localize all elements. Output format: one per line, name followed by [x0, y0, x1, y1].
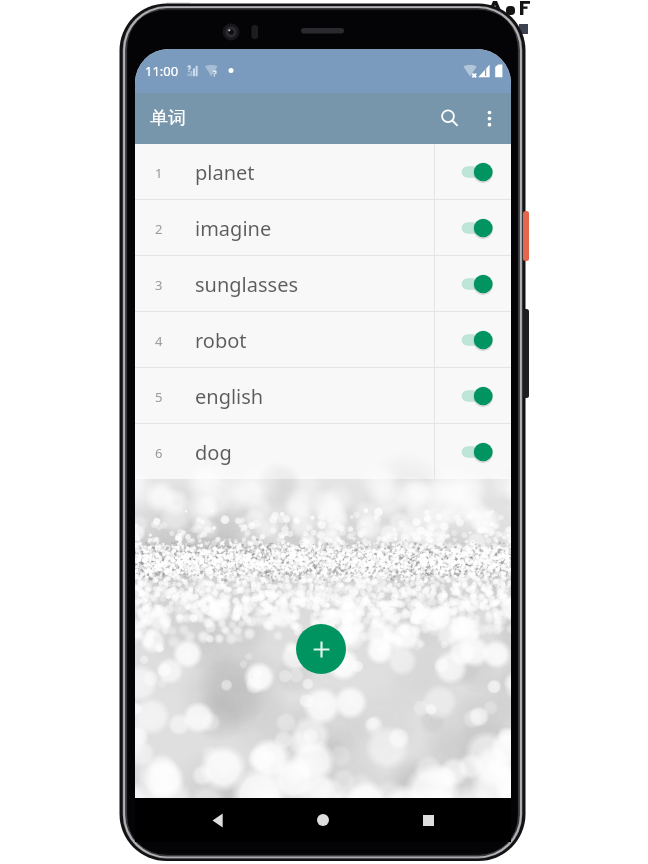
- button[interactable]: 6: [135, 424, 511, 479]
- staticText: 1: [155, 164, 163, 182]
- staticText: planet: [195, 159, 434, 186]
- button[interactable]: Search: [426, 93, 472, 144]
- button[interactable]: Toggle imagine: [446, 212, 500, 244]
- button[interactable]: Back: [196, 798, 240, 842]
- staticText: imagine: [195, 215, 434, 242]
- button[interactable]: 3: [135, 256, 511, 311]
- staticText: 单词: [150, 107, 186, 130]
- button[interactable]: Recents: [406, 798, 450, 842]
- button[interactable]: Home: [301, 798, 345, 842]
- staticText: robot: [195, 327, 434, 354]
- button[interactable]: 4: [135, 312, 511, 367]
- button[interactable]: Toggle english: [446, 380, 500, 412]
- button[interactable]: Toggle planet: [446, 156, 500, 188]
- staticText: 11:00: [145, 62, 179, 80]
- staticText: 6: [155, 444, 163, 462]
- button[interactable]: 2: [135, 200, 511, 255]
- button[interactable]: 1: [135, 144, 511, 199]
- staticText: english: [195, 383, 434, 410]
- staticText: sunglasses: [195, 271, 434, 298]
- staticText: 3: [155, 276, 163, 294]
- button[interactable]: More options: [472, 93, 506, 144]
- button[interactable]: Toggle sunglasses: [446, 268, 500, 300]
- staticText: 5: [155, 388, 163, 406]
- button[interactable]: 5: [135, 368, 511, 423]
- staticText: 4: [155, 332, 163, 350]
- staticText: 2: [155, 220, 163, 238]
- staticText: dog: [195, 439, 434, 466]
- button[interactable]: Add word: [296, 624, 346, 674]
- button[interactable]: Toggle robot: [446, 324, 500, 356]
- button[interactable]: Toggle dog: [446, 436, 500, 468]
